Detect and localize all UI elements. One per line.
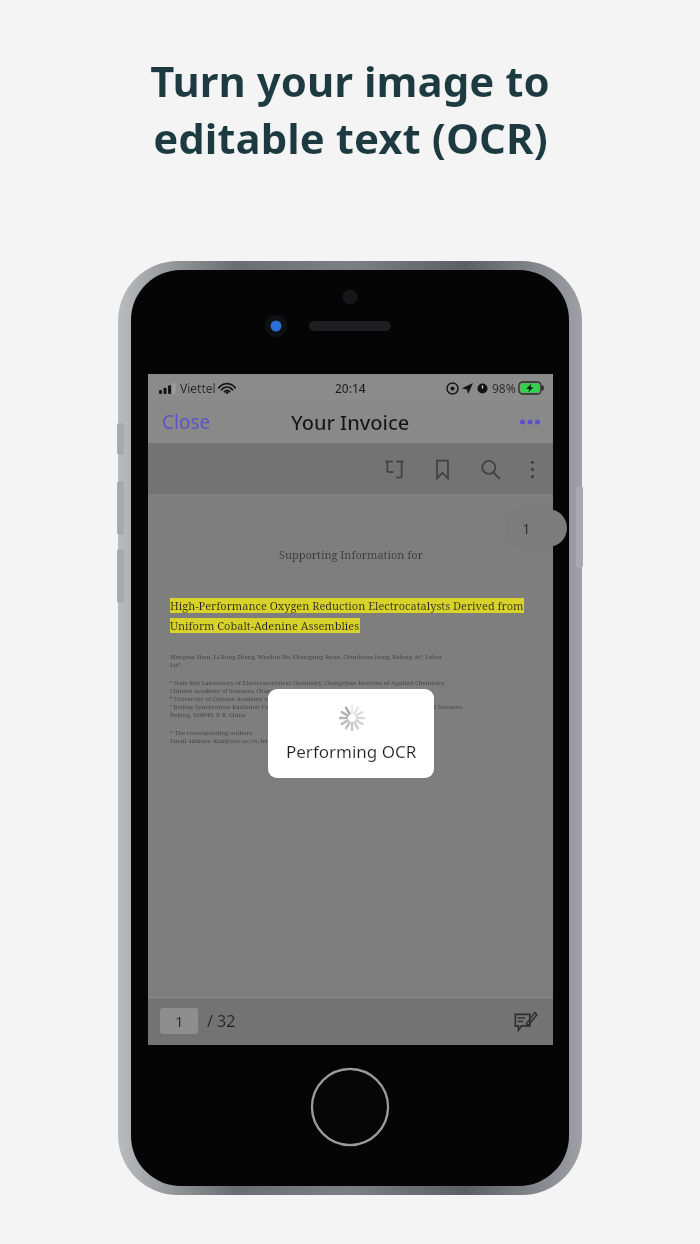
button[interactable]: Search (473, 452, 507, 486)
staticText: ᵃ State Key Laboratory of Electroanalyti… (170, 679, 446, 687)
staticText: Lu* (170, 661, 181, 669)
button[interactable]: Annotate (507, 1003, 543, 1039)
button[interactable]: 1 (505, 509, 567, 547)
staticText: Mengxia Shen, Li-Rong Zheng, Wenhui He, … (170, 653, 442, 661)
button[interactable]: Menu (515, 452, 549, 486)
staticText: 1 (175, 1011, 184, 1031)
button[interactable]: Fit page (377, 452, 411, 486)
staticText: Close (162, 409, 211, 435)
button[interactable]: Close (162, 401, 211, 443)
staticText: High-Performance Oxygen Reduction Electr… (170, 598, 524, 613)
staticText: Beijing, 100049, P. R. China (170, 711, 246, 719)
button[interactable]: 1 (160, 1008, 198, 1034)
button[interactable]: Bookmark (425, 452, 459, 486)
staticText: 98% (492, 380, 516, 396)
staticText: 1 (522, 518, 531, 538)
staticText: Your Invoice (291, 409, 410, 436)
button[interactable]: More options (507, 401, 553, 443)
staticText: Chinese Academy of Sciences, Changchun, … (170, 687, 358, 695)
staticText: Performing OCR (286, 740, 417, 763)
staticText: Turn your image to (150, 52, 550, 109)
staticText: 20:14 (335, 380, 366, 396)
staticText: Email address: klai@ciac.ac.cn; lehuilu@… (170, 737, 316, 745)
staticText: Supporting Information for (279, 547, 423, 562)
staticText: Uniform Cobalt-Adenine Assemblies (170, 618, 360, 633)
staticText: editable text (OCR) (153, 109, 548, 166)
staticText: / 32 (207, 1010, 236, 1032)
staticText: ᵇ University of Chinese Academy of Scien… (170, 695, 373, 703)
staticText: * The corresponding authors (170, 729, 253, 737)
staticText: Viettel (180, 380, 216, 396)
staticText: ᶜ Beijing Synchrotron Radiation Facility… (170, 703, 464, 711)
